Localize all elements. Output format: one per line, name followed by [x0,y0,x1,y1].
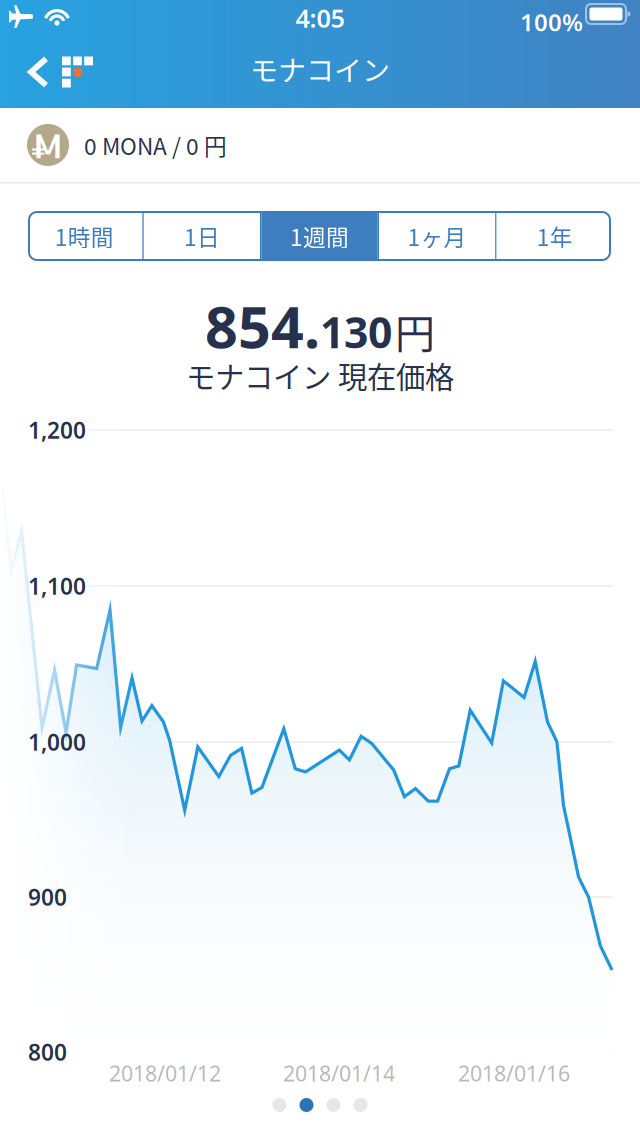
button[interactable]: 1年 [497,212,613,260]
staticText: 0 MONA / 0 円 [84,129,227,161]
staticText: 1年 [537,220,573,252]
staticText: 4:05 [295,1,344,35]
staticText: 1日 [184,220,220,252]
staticText: 1,000 [28,727,86,757]
staticText: 130 [320,303,392,360]
button[interactable]: 0 MONA / 0 円 [0,108,640,182]
staticText: 2018/01/12 [109,1059,221,1087]
staticText: 900 [28,882,67,912]
staticText: 1ヶ月 [408,220,467,252]
staticText: 1週間 [290,220,349,252]
button[interactable]: 1日 [144,212,260,260]
button[interactable]: Back [0,40,109,104]
staticText: 円 [395,302,435,360]
staticText: 2018/01/16 [458,1059,570,1087]
staticText: モナコイン [250,49,390,89]
staticText: モナコイン 現在価格 [186,354,454,396]
staticText: 100% [520,6,583,38]
button[interactable]: 1ヶ月 [379,212,495,260]
staticText: 1時間 [55,220,114,252]
staticText: 854 [205,288,304,364]
button[interactable]: 1時間 [26,212,142,260]
staticText: 1,200 [28,415,86,445]
button[interactable]: 1週間 [261,212,378,260]
staticText: . [304,288,320,364]
staticText: 2018/01/14 [283,1059,395,1087]
staticText: 800 [28,1037,67,1067]
staticText: 1,100 [28,571,86,601]
